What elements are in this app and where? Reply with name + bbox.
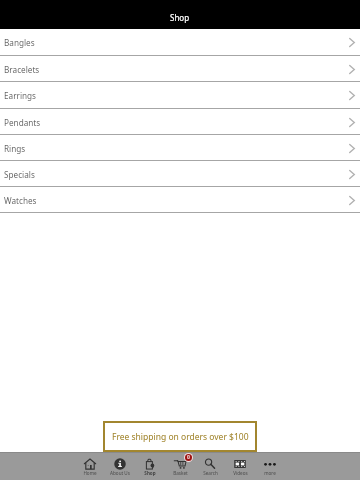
staticText: Bracelets [4, 64, 40, 75]
staticText: Home [83, 470, 97, 476]
button[interactable]: Rings [0, 135, 360, 161]
other: Videos [234, 458, 246, 470]
other: Home [84, 458, 96, 470]
button[interactable]: Home [75, 452, 105, 480]
staticText: Pendants [4, 117, 41, 128]
other: More [264, 458, 276, 470]
button[interactable]: Free shipping on orders over $100 [103, 421, 257, 452]
button[interactable]: Shop [135, 452, 165, 480]
staticText: Shop [170, 12, 190, 23]
button[interactable]: Bangles [0, 29, 360, 56]
button[interactable]: About Us [105, 452, 135, 480]
button[interactable]: Pendants [0, 109, 360, 135]
button[interactable]: Search [195, 452, 225, 480]
button[interactable]: Basket [165, 452, 195, 480]
staticText: Watches [4, 195, 37, 206]
staticText: About Us [110, 470, 130, 476]
button[interactable]: Bracelets [0, 56, 360, 82]
other: Basket [174, 458, 186, 470]
other: Shop [144, 458, 156, 470]
staticText: Shop [144, 470, 156, 476]
staticText: Specials [4, 169, 35, 180]
staticText: Free shipping on orders over $100 [112, 431, 249, 443]
button[interactable]: Earrings [0, 82, 360, 109]
staticText: more [264, 470, 276, 476]
button[interactable]: More [255, 452, 285, 480]
staticText: 0 [187, 454, 190, 461]
staticText: Earrings [4, 90, 37, 101]
other: About Us [114, 458, 126, 470]
staticText: Rings [4, 143, 26, 154]
staticText: Basket [173, 470, 188, 476]
staticText: Search [203, 470, 218, 476]
button[interactable]: Specials [0, 161, 360, 187]
button[interactable]: Videos [225, 452, 255, 480]
button[interactable]: Watches [0, 187, 360, 213]
staticText: Videos [233, 470, 248, 476]
staticText: Bangles [4, 37, 35, 48]
other: Search [204, 458, 216, 470]
